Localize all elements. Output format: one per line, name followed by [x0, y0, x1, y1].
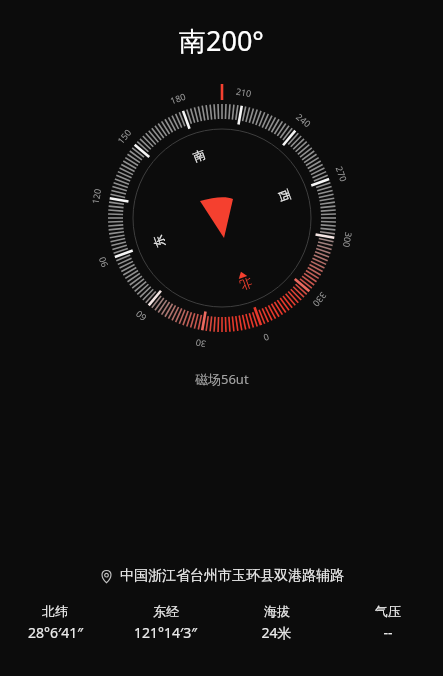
- button[interactable]: 海拔: [221, 603, 332, 642]
- staticText: 240: [294, 110, 314, 130]
- staticText: 24米: [261, 623, 292, 642]
- staticText: 150: [114, 126, 134, 146]
- button[interactable]: Location: [0, 567, 443, 585]
- staticText: 60: [132, 308, 148, 324]
- staticText: 330: [310, 290, 330, 310]
- staticText: 90: [95, 255, 110, 269]
- button[interactable]: 气压: [332, 603, 443, 642]
- staticText: 南: [191, 146, 207, 165]
- button[interactable]: 北纬: [0, 603, 110, 642]
- staticText: 30: [194, 337, 207, 351]
- staticText: 气压: [375, 603, 401, 619]
- staticText: 120: [89, 187, 103, 205]
- staticText: 西: [276, 187, 294, 204]
- other: Location: [100, 570, 113, 583]
- staticText: 121°14′3″: [134, 623, 197, 642]
- staticText: 270: [334, 164, 350, 183]
- staticText: 北纬: [42, 603, 68, 619]
- staticText: 东经: [153, 603, 179, 619]
- staticText: --: [383, 623, 393, 642]
- staticText: 磁场56ut: [195, 370, 249, 388]
- staticText: 北: [238, 275, 254, 293]
- staticText: 海拔: [264, 603, 290, 619]
- staticText: 28°6′41″: [28, 623, 83, 642]
- button[interactable]: 东经: [110, 603, 221, 642]
- button[interactable]: Compass dial: [72, 68, 372, 368]
- staticText: 0: [261, 331, 271, 345]
- staticText: 180: [168, 90, 187, 106]
- staticText: 东: [150, 233, 168, 250]
- staticText: 中国浙江省台州市玉环县双港路辅路: [120, 567, 344, 585]
- staticText: 300: [341, 231, 355, 249]
- staticText: 南200°: [179, 22, 264, 59]
- staticText: 210: [235, 85, 253, 99]
